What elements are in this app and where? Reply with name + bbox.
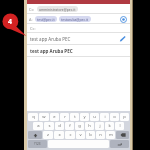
staticText: g (78, 123, 81, 129)
button[interactable]: Cc: (27, 24, 130, 32)
staticText: u (93, 114, 96, 120)
button[interactable]: n (96, 131, 105, 139)
staticText: h (88, 123, 91, 129)
staticText: ?123 (34, 142, 41, 146)
button[interactable]: testaruba@pec.it (59, 16, 91, 22)
staticText: A: (29, 17, 33, 22)
staticText: Cc: (29, 7, 35, 12)
staticText: test app Aruba PEC (30, 36, 71, 42)
button[interactable]: Enter (110, 140, 129, 148)
button[interactable]: g (75, 122, 84, 130)
button[interactable]: s (44, 122, 54, 130)
button[interactable]: q (28, 113, 38, 121)
button[interactable]: j (95, 122, 104, 130)
staticText: e (53, 114, 56, 120)
button[interactable]: k (105, 122, 114, 130)
staticText: test app Aruba PEC (30, 48, 73, 54)
staticText: c (69, 132, 72, 138)
staticText: f (69, 123, 71, 129)
button[interactable]: Shift (28, 131, 42, 139)
button[interactable]: Add contact (119, 15, 127, 23)
staticText: n (99, 132, 102, 138)
button[interactable]: d (55, 122, 64, 130)
button[interactable]: p (120, 113, 129, 121)
button[interactable]: o (110, 113, 119, 121)
button[interactable]: z (43, 131, 53, 139)
staticText: s (48, 123, 51, 129)
button[interactable]: amministratore@pec.it (37, 6, 78, 12)
staticText: testaruba@pec.it (61, 17, 89, 22)
button[interactable]: i (100, 113, 109, 121)
button[interactable]: x (54, 131, 64, 139)
staticText: b (89, 132, 92, 138)
button[interactable]: c (65, 131, 75, 139)
staticText: q (32, 114, 35, 120)
staticText: amministratore@pec.it (39, 7, 76, 12)
staticText: y (83, 114, 86, 120)
button[interactable]: a (33, 122, 43, 130)
staticText: j (99, 123, 101, 129)
button[interactable]: test@pec.it (35, 16, 57, 22)
button[interactable]: A: (27, 14, 130, 23)
staticText: w (42, 114, 46, 120)
button[interactable]: t (70, 113, 79, 121)
button[interactable]: v (76, 131, 85, 139)
button[interactable]: b (86, 131, 95, 139)
staticText: i (104, 114, 106, 120)
button[interactable]: r (60, 113, 69, 121)
button[interactable]: Symbols (28, 140, 47, 148)
staticText: d (58, 123, 61, 129)
button[interactable]: y (80, 113, 89, 121)
staticText: l (119, 123, 121, 129)
button[interactable]: m (106, 131, 115, 139)
staticText: 4 (6, 17, 14, 27)
button[interactable]: test app Aruba PEC (27, 33, 130, 44)
staticText: v (79, 132, 82, 138)
staticText: r (64, 114, 66, 120)
staticText: p (123, 114, 126, 120)
button[interactable]: f (65, 122, 74, 130)
button[interactable]: w (39, 113, 49, 121)
staticText: a (37, 123, 40, 129)
button[interactable]: u (90, 113, 99, 121)
staticText: z (47, 132, 49, 138)
button[interactable]: test app Aruba PEC (27, 45, 130, 56)
staticText: x (58, 132, 61, 138)
staticText: t (74, 114, 76, 120)
staticText: o (113, 114, 116, 120)
staticText: k (108, 123, 111, 129)
button[interactable]: Edit (118, 34, 127, 43)
button[interactable]: Backspace (116, 131, 129, 139)
button[interactable]: e (50, 113, 59, 121)
staticText: m (109, 132, 113, 138)
staticText: Cc: (30, 26, 36, 31)
staticText: test@pec.it (37, 17, 55, 22)
button[interactable]: Cc: (27, 4, 130, 13)
button[interactable]: l (115, 122, 124, 130)
button[interactable]: h (85, 122, 94, 130)
